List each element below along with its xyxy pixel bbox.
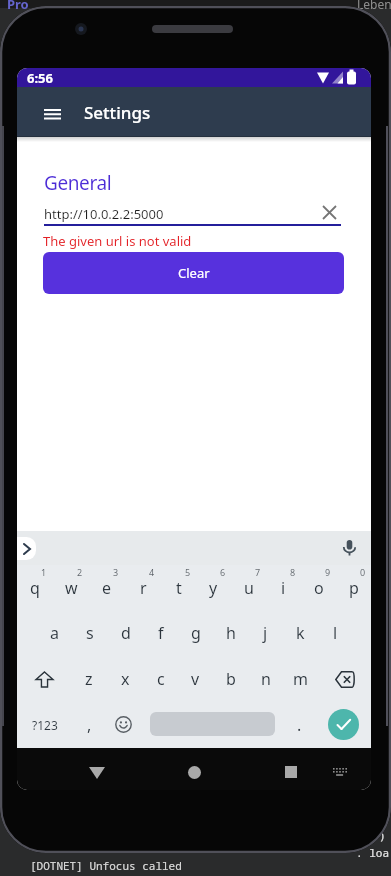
button[interactable]: . <box>287 702 311 747</box>
staticText: e <box>102 577 112 599</box>
button[interactable]: c <box>143 656 178 702</box>
button[interactable]: , <box>75 702 103 747</box>
staticText: Leben <box>357 0 391 12</box>
button[interactable]: u <box>231 565 266 610</box>
staticText: http://10.0.2.2:5000 <box>44 205 164 223</box>
button[interactable]: j <box>248 610 283 656</box>
staticText: c <box>157 668 165 690</box>
staticText: , <box>87 714 92 736</box>
button[interactable]: p <box>336 565 371 610</box>
button[interactable] <box>315 198 343 226</box>
button[interactable]: s <box>72 610 108 656</box>
staticText: v <box>191 668 200 690</box>
staticText: z <box>85 668 93 690</box>
button[interactable] <box>328 709 359 740</box>
staticText: k <box>296 622 305 644</box>
button[interactable]: l <box>318 610 353 656</box>
button[interactable] <box>82 758 112 788</box>
staticText: 5 <box>185 566 191 578</box>
staticText: 1 <box>41 566 47 578</box>
staticText: y <box>209 577 218 599</box>
button[interactable] <box>335 534 363 562</box>
button[interactable]: h <box>213 610 248 656</box>
button[interactable]: x <box>107 656 143 702</box>
button[interactable]: i <box>266 565 301 610</box>
staticText: p <box>349 577 359 599</box>
staticText: d <box>121 622 131 644</box>
staticText: m <box>293 668 308 690</box>
staticText: a <box>50 622 59 644</box>
button[interactable]: r <box>125 565 161 610</box>
button[interactable]: m <box>283 656 318 702</box>
button[interactable]: w <box>53 565 89 610</box>
staticText: o <box>314 577 324 599</box>
staticText: b <box>226 668 236 690</box>
staticText: 8 <box>290 566 296 578</box>
button[interactable]: z <box>71 656 107 702</box>
button[interactable] <box>325 757 355 787</box>
staticText: 7 <box>255 566 261 578</box>
staticText: ) <box>379 828 386 843</box>
staticText: The given url is not valid <box>43 232 192 250</box>
button[interactable]: k <box>283 610 318 656</box>
staticText: g <box>191 622 201 644</box>
staticText: Settings <box>84 101 151 124</box>
button[interactable]: v <box>178 656 213 702</box>
button[interactable] <box>27 87 77 137</box>
staticText: 3 <box>113 566 119 578</box>
staticText: 9 <box>325 566 331 578</box>
button[interactable]: f <box>143 610 178 656</box>
staticText: 0 <box>360 566 366 578</box>
staticText: General <box>44 170 112 196</box>
staticText: f <box>158 622 164 644</box>
button[interactable]: e <box>89 565 125 610</box>
staticText: q <box>30 577 40 599</box>
button[interactable] <box>17 537 36 560</box>
button[interactable]: Clear <box>43 252 344 294</box>
button[interactable] <box>276 757 306 787</box>
staticText: Clear <box>178 264 210 282</box>
staticText: j <box>263 622 268 644</box>
staticText: u <box>244 577 254 599</box>
staticText: 6:56 <box>27 69 53 87</box>
staticText: l <box>333 622 338 644</box>
button[interactable] <box>179 757 209 787</box>
staticText: n <box>261 668 271 690</box>
button[interactable] <box>17 656 71 702</box>
staticText: i <box>281 577 286 599</box>
staticText: x <box>121 668 130 690</box>
button[interactable]: n <box>248 656 283 702</box>
button[interactable]: q <box>17 565 53 610</box>
staticText: 4 <box>149 566 155 578</box>
staticText: Pro <box>7 0 29 13</box>
button[interactable]: a <box>36 610 72 656</box>
button[interactable]: ?123 <box>23 702 67 747</box>
staticText: h <box>226 622 236 644</box>
staticText: [DOTNET] Unfocus called <box>30 858 182 873</box>
button[interactable] <box>318 656 371 702</box>
button[interactable]: d <box>108 610 143 656</box>
staticText: . loa <box>356 845 389 860</box>
button[interactable]: y <box>196 565 231 610</box>
button[interactable] <box>150 712 275 736</box>
staticText: . <box>297 714 302 736</box>
button[interactable]: g <box>178 610 213 656</box>
button[interactable]: b <box>213 656 248 702</box>
staticText: t <box>176 577 182 599</box>
button[interactable]: t <box>161 565 196 610</box>
button[interactable]: o <box>301 565 336 610</box>
button[interactable] <box>106 702 140 747</box>
staticText: 6 <box>220 566 226 578</box>
staticText: r <box>140 577 147 599</box>
staticText: 2 <box>77 566 83 578</box>
staticText: s <box>86 622 94 644</box>
staticText: w <box>65 577 78 599</box>
staticText: ?123 <box>32 717 58 733</box>
